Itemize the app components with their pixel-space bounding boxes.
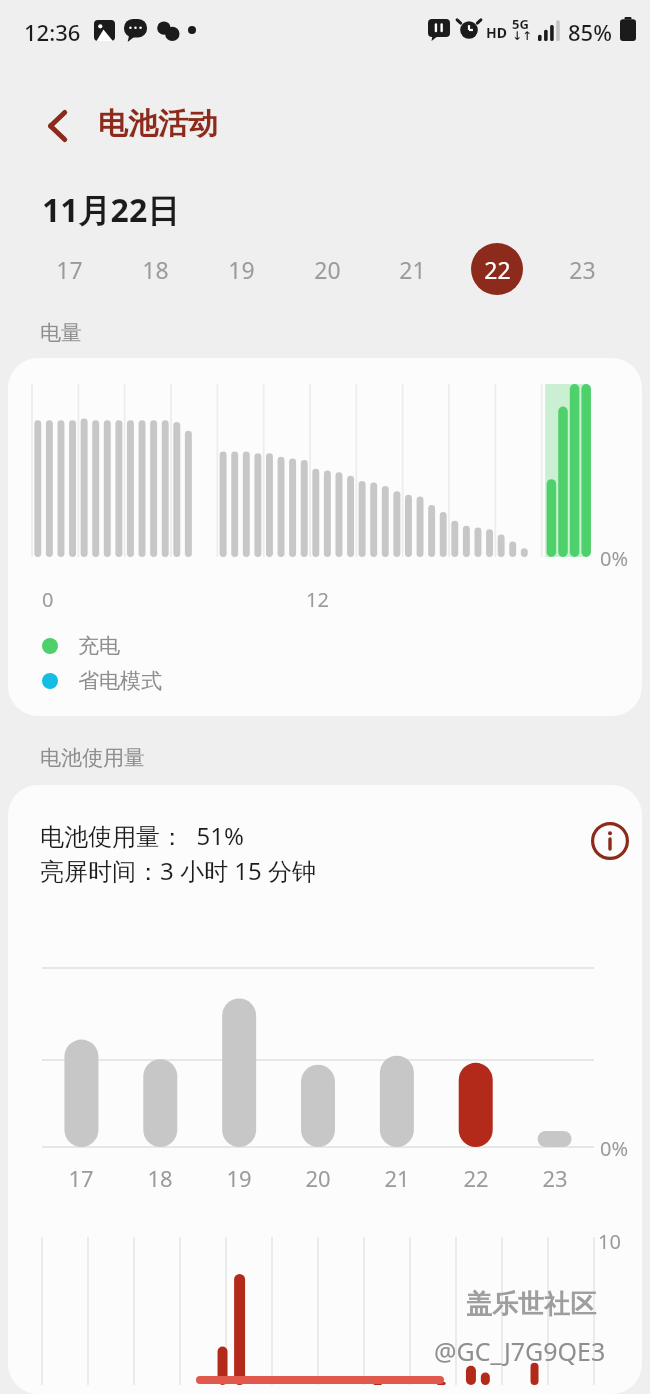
staticText: 12: [306, 586, 329, 613]
staticText: 18: [142, 254, 169, 285]
staticText: 11月22日: [42, 188, 180, 232]
button[interactable]: 17: [26, 243, 112, 295]
staticText: 电池活动: [98, 105, 218, 143]
staticText: 19: [228, 254, 255, 285]
staticText: 充电: [78, 633, 120, 659]
staticText: 22: [463, 1163, 489, 1193]
staticText: 21: [384, 1163, 410, 1193]
staticText: 21: [399, 254, 426, 285]
staticText: @GC_J7G9QE3: [434, 1334, 606, 1368]
button[interactable]: 22: [454, 243, 539, 295]
staticText: 19: [226, 1163, 252, 1193]
staticText: 22: [484, 254, 511, 285]
button[interactable]: 19: [198, 243, 284, 295]
button[interactable]: 23: [539, 243, 624, 295]
staticText: 0%: [600, 1135, 629, 1162]
button[interactable]: 21: [369, 243, 454, 295]
button[interactable]: 18: [112, 243, 198, 295]
staticText: 盖乐世社区: [466, 1288, 596, 1321]
staticText: ↓↑: [512, 29, 533, 43]
staticText: 23: [569, 254, 596, 285]
button[interactable]: 0%: [8, 358, 642, 716]
staticText: 亮屏时间：3 小时 15 分钟: [40, 854, 316, 887]
staticText: 23: [542, 1163, 568, 1193]
staticText: 0: [42, 586, 54, 613]
staticText: 12:36: [24, 17, 81, 47]
staticText: 18: [147, 1163, 173, 1193]
staticText: 10: [598, 1228, 621, 1255]
button[interactable]: 20: [284, 243, 369, 295]
staticText: 电池使用量： 51%: [40, 819, 244, 852]
staticText: HD: [486, 23, 507, 42]
staticText: 20: [305, 1163, 331, 1193]
staticText: 省电模式: [78, 668, 162, 694]
staticText: 0%: [600, 545, 629, 572]
staticText: 电池使用量: [40, 745, 145, 771]
button[interactable]: Back: [28, 100, 80, 152]
staticText: 电量: [40, 320, 82, 346]
staticText: 20: [314, 254, 341, 285]
staticText: 17: [68, 1163, 94, 1193]
staticText: 5G: [512, 15, 529, 33]
button[interactable]: Information: [580, 811, 640, 871]
staticText: 17: [56, 254, 83, 285]
staticText: 85%: [568, 17, 612, 47]
